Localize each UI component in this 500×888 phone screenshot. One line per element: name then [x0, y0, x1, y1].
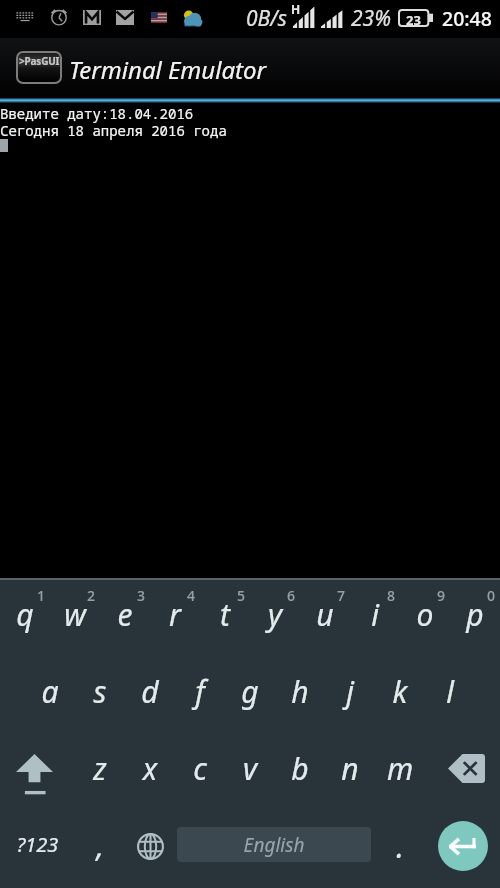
button[interactable]: Change keyboard language — [125, 811, 177, 888]
staticText: 4 — [181, 586, 201, 605]
button[interactable]: b — [275, 733, 325, 811]
staticText: English — [177, 832, 371, 858]
staticText: 8 — [381, 586, 401, 605]
button[interactable]: 9 — [400, 579, 450, 656]
button[interactable]: ?123 — [0, 811, 75, 888]
button[interactable]: f — [175, 656, 225, 734]
staticText: b — [275, 748, 325, 789]
button[interactable]: 7 — [300, 579, 350, 656]
button[interactable]: h — [275, 656, 325, 734]
staticText: g — [225, 671, 275, 712]
staticText: 9 — [431, 586, 451, 605]
staticText: d — [125, 671, 175, 712]
staticText: z — [75, 748, 125, 789]
button[interactable]: s — [75, 656, 125, 734]
staticText: 0B/s — [246, 4, 287, 33]
staticText: Terminal Emulator — [69, 53, 267, 86]
button[interactable]: 2 — [50, 579, 100, 656]
button[interactable]: a — [25, 656, 75, 734]
button[interactable]: Enter — [438, 821, 488, 871]
button[interactable]: g — [225, 656, 275, 734]
staticText: k — [375, 671, 425, 712]
button[interactable]: 6 — [250, 579, 300, 656]
staticText: c — [175, 748, 225, 789]
button[interactable]: k — [375, 656, 425, 734]
staticText: 20:48 — [442, 5, 492, 32]
staticText: v — [225, 748, 275, 789]
button[interactable]: d — [125, 656, 175, 734]
staticText: 23 — [398, 11, 429, 29]
staticText: m — [375, 748, 425, 789]
staticText: o — [400, 594, 450, 635]
button[interactable]: 0 — [450, 579, 500, 656]
staticText: 5 — [231, 586, 251, 605]
staticText: 7 — [331, 586, 351, 605]
staticText: i — [350, 594, 400, 635]
button[interactable]: x — [125, 733, 175, 811]
staticText: l — [425, 671, 475, 712]
button[interactable]: z — [75, 733, 125, 811]
button[interactable]: 5 — [200, 579, 250, 656]
staticText: 2 — [81, 586, 101, 605]
button[interactable]: 3 — [100, 579, 150, 656]
staticText: >PasGUI — [19, 54, 60, 68]
staticText: w — [50, 594, 100, 635]
staticText: h — [275, 671, 325, 712]
staticText: . — [375, 826, 425, 867]
staticText: H — [291, 1, 301, 17]
staticText: e — [100, 594, 150, 635]
button[interactable]: j — [325, 656, 375, 734]
staticText: 0 — [481, 586, 500, 605]
staticText: ?123 — [0, 831, 75, 858]
button[interactable]: v — [225, 733, 275, 811]
staticText: x — [125, 748, 175, 789]
staticText: y — [250, 594, 300, 635]
button[interactable]: Shift — [0, 733, 70, 811]
button[interactable]: . — [375, 811, 425, 888]
staticText: j — [325, 671, 375, 712]
staticText: 3 — [131, 586, 151, 605]
staticText: f — [175, 671, 225, 712]
staticText: n — [325, 748, 375, 789]
button[interactable]: , — [75, 811, 125, 888]
button[interactable]: m — [375, 733, 425, 811]
staticText: Введите дату:18.04.2016 — [0, 104, 194, 123]
button[interactable]: 8 — [350, 579, 400, 656]
staticText: u — [300, 594, 350, 635]
staticText: 1 — [31, 586, 51, 605]
staticText: 6 — [281, 586, 301, 605]
staticText: 23% — [351, 4, 391, 33]
button[interactable]: n — [325, 733, 375, 811]
button[interactable]: 4 — [150, 579, 200, 656]
button[interactable]: c — [175, 733, 225, 811]
staticText: r — [150, 594, 200, 635]
staticText: Сегодня 18 апреля 2016 года — [0, 121, 227, 140]
staticText: s — [75, 671, 125, 712]
button[interactable]: Space — [177, 827, 371, 862]
button[interactable]: 1 — [0, 579, 50, 656]
staticText: , — [75, 825, 125, 866]
staticText: t — [200, 594, 250, 635]
staticText: q — [0, 594, 50, 635]
staticText: a — [25, 671, 75, 712]
button[interactable]: Backspace — [425, 733, 500, 811]
button[interactable]: l — [425, 656, 475, 734]
staticText: p — [450, 594, 500, 635]
